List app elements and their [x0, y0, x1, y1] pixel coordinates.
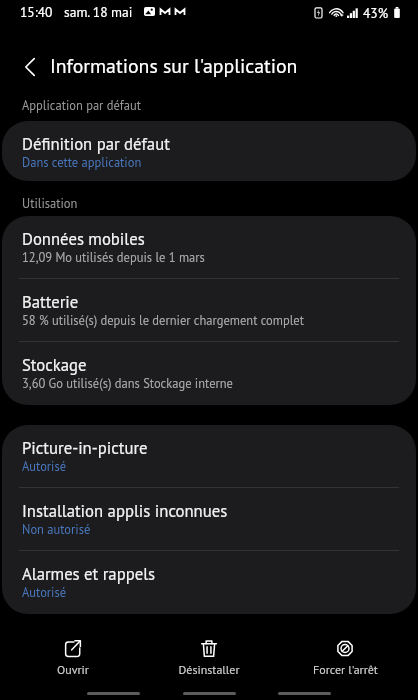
staticText: Utilisation — [22, 195, 78, 211]
staticText: Installation applis inconnues — [22, 500, 228, 522]
staticText: Autorisé — [22, 458, 67, 474]
staticText: 15:40 — [20, 3, 53, 20]
button[interactable]: Back — [11, 48, 49, 86]
staticText: Stockage — [22, 354, 87, 376]
staticText: 43% — [363, 4, 389, 21]
button[interactable]: Installation applis inconnues — [2, 488, 416, 551]
staticText: Forcer l'arrêt — [313, 662, 378, 675]
button[interactable]: Définition par défaut — [2, 121, 416, 181]
staticText: Définition par défaut — [22, 133, 170, 155]
staticText: Application par défaut — [22, 97, 141, 113]
staticText: sam. 18 mai — [64, 3, 133, 20]
staticText: 3,60 Go utilisé(s) dans Stockage interne — [22, 375, 233, 391]
button[interactable]: Alarmes et rappels — [2, 551, 416, 614]
staticText: Batterie — [22, 291, 79, 313]
staticText: Picture-in-picture — [22, 437, 148, 459]
button[interactable]: Désinstaller — [141, 629, 277, 675]
staticText: Autorisé — [22, 584, 67, 600]
button[interactable]: Picture-in-picture — [2, 425, 416, 488]
button[interactable]: Batterie — [2, 279, 416, 342]
button[interactable]: Données mobiles — [2, 216, 416, 279]
button[interactable]: Ouvrir — [5, 629, 141, 675]
staticText: Non autorisé — [22, 521, 91, 537]
staticText: Ouvrir — [57, 662, 89, 675]
staticText: 58 % utilisé(s) depuis le dernier charge… — [22, 312, 304, 328]
staticText: Informations sur l'application — [50, 53, 298, 79]
staticText: 12,09 Mo utilisés depuis le 1 mars — [22, 249, 205, 265]
staticText: Dans cette application — [22, 154, 142, 170]
button[interactable]: Stockage — [2, 342, 416, 405]
staticText: Données mobiles — [22, 228, 145, 250]
button[interactable]: Forcer l'arrêt — [277, 629, 413, 675]
staticText: Désinstaller — [178, 662, 240, 675]
staticText: Alarmes et rappels — [22, 563, 156, 585]
